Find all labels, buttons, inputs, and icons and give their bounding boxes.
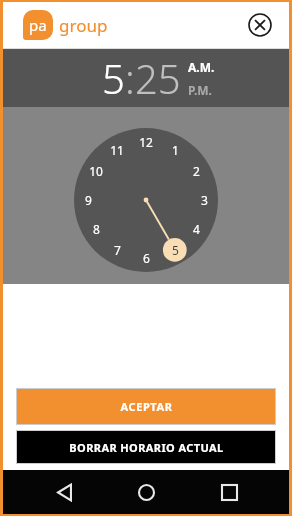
staticText: ACEPTAR bbox=[120, 399, 173, 414]
button[interactable]: 25 bbox=[135, 51, 181, 105]
button[interactable]: BORRAR HORARIO ACTUAL bbox=[17, 431, 275, 463]
button[interactable]: Clock dial, hour 5 selected bbox=[74, 128, 218, 272]
staticText: 4 bbox=[193, 221, 200, 237]
button[interactable]: A.M. bbox=[188, 59, 215, 75]
staticText: 1 bbox=[172, 142, 179, 158]
staticText: 11 bbox=[110, 142, 124, 158]
button[interactable]: Close bbox=[246, 11, 274, 39]
button[interactable]: pa bbox=[23, 10, 108, 40]
staticText: : bbox=[125, 51, 135, 105]
staticText: pa bbox=[29, 15, 47, 35]
staticText: 6 bbox=[143, 250, 150, 266]
staticText: 3 bbox=[201, 192, 208, 208]
button[interactable]: P.M. bbox=[188, 82, 212, 98]
staticText: 9 bbox=[85, 192, 92, 208]
button[interactable]: Home bbox=[124, 470, 168, 514]
staticText: 10 bbox=[89, 163, 103, 179]
staticText: BORRAR HORARIO ACTUAL bbox=[69, 440, 224, 455]
button[interactable]: Recent apps bbox=[207, 470, 251, 514]
staticText: 5 bbox=[172, 242, 179, 258]
button[interactable]: 5 bbox=[102, 51, 125, 105]
button[interactable]: Back bbox=[42, 470, 86, 514]
button[interactable]: ACEPTAR bbox=[17, 389, 275, 424]
staticText: 2 bbox=[193, 163, 200, 179]
staticText: group bbox=[59, 14, 108, 37]
staticText: 12 bbox=[139, 134, 153, 150]
staticText: 8 bbox=[93, 221, 100, 237]
staticText: 7 bbox=[114, 242, 121, 258]
